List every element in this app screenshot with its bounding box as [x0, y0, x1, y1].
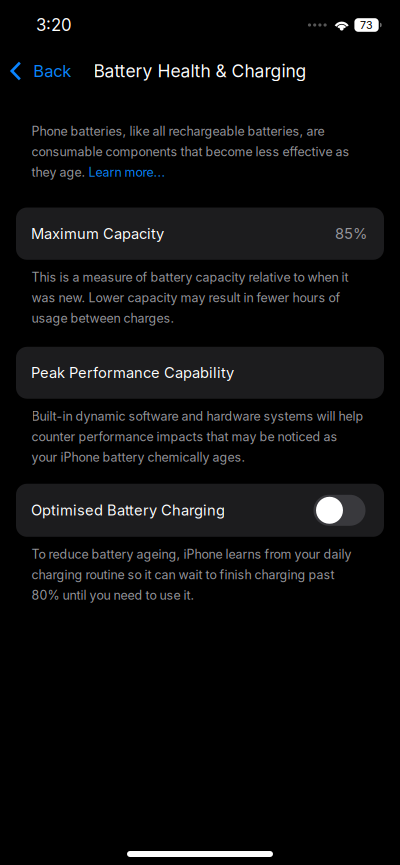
staticText: To reduce battery ageing, iPhone learns … — [31, 547, 351, 562]
staticText: 73 — [360, 18, 373, 31]
staticText: Built-in dynamic software and hardware s… — [31, 409, 363, 424]
staticText: counter performance impacts that may be … — [31, 429, 337, 444]
staticText: 80% until you need to use it. — [31, 588, 194, 603]
staticText: Maximum Capacity — [31, 225, 164, 242]
button[interactable]: Back — [0, 54, 79, 88]
staticText: Peak Performance Capability — [31, 364, 234, 382]
staticText: usage between charges. — [31, 311, 174, 326]
staticText: 85% — [335, 225, 367, 242]
staticText: 3:20 — [36, 15, 72, 35]
button[interactable]: Learn more... — [88, 165, 165, 180]
button[interactable]: Optimised Battery Charging — [313, 495, 365, 526]
staticText: Phone batteries, like all rechargeable b… — [31, 124, 324, 139]
staticText: they age. — [31, 165, 88, 180]
button[interactable]: Maximum Capacity — [16, 207, 384, 260]
staticText: your iPhone battery chemically ages. — [31, 450, 245, 465]
button[interactable]: Peak Performance Capability — [16, 347, 384, 399]
staticText: Learn more... — [88, 165, 165, 180]
staticText: Optimised Battery Charging — [31, 501, 225, 519]
staticText: Battery Health & Charging — [93, 60, 306, 81]
staticText: This is a measure of battery capacity re… — [31, 270, 348, 285]
staticText: charging routine so it can wait to finis… — [31, 567, 334, 582]
staticText: consumable components that become less e… — [31, 144, 349, 159]
staticText: Back — [33, 61, 71, 81]
staticText: was new. Lower capacity may result in fe… — [31, 290, 340, 305]
